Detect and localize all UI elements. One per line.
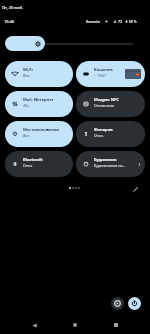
staticText: Фонарик	[94, 127, 113, 132]
button[interactable]: Фонарик	[76, 121, 145, 147]
button[interactable]: Кошелек	[76, 61, 145, 87]
staticText: Будильник	[94, 157, 117, 162]
staticText: Откл.	[94, 133, 104, 138]
staticText: Wi-Fi	[23, 67, 33, 72]
button[interactable]: Home	[66, 316, 84, 334]
staticText: 60 %	[129, 19, 137, 24]
staticText: Местоположение	[23, 127, 60, 132]
staticText: 15:46	[4, 19, 15, 24]
staticText: Билайн	[86, 19, 101, 24]
staticText: Вкл.	[23, 133, 31, 138]
button[interactable]: Будильник	[76, 151, 145, 177]
staticText: Моб. Интернет	[23, 97, 54, 102]
staticText: Кошелек	[94, 67, 113, 72]
button[interactable]: Bluetooth	[5, 151, 73, 177]
staticText: 72	[118, 19, 123, 24]
button[interactable]: Back	[25, 316, 43, 334]
button[interactable]: Моб. Интернет	[5, 91, 73, 117]
button[interactable]: Brightness	[5, 36, 45, 51]
staticText: Модуль NFC	[94, 97, 119, 102]
staticText: Bluetooth	[23, 157, 43, 162]
staticText: Откл.	[23, 163, 33, 168]
button[interactable]: Settings	[111, 297, 124, 310]
button[interactable]: Местоположение	[5, 121, 73, 147]
button[interactable]: Edit tiles	[131, 185, 140, 194]
button[interactable]: Wi-Fi	[5, 61, 73, 87]
staticText: 4G+	[23, 103, 30, 108]
staticText: ··· 5567	[94, 73, 107, 78]
staticText: Будильников не…	[94, 163, 126, 168]
staticText: Вкл.	[23, 73, 31, 78]
button[interactable]: Recents	[107, 316, 125, 334]
button[interactable]: Power	[128, 297, 141, 310]
staticText: Пн, 20 нояб.	[2, 5, 23, 10]
button[interactable]: Модуль NFC	[76, 91, 145, 117]
staticText: Отключено	[94, 103, 115, 108]
